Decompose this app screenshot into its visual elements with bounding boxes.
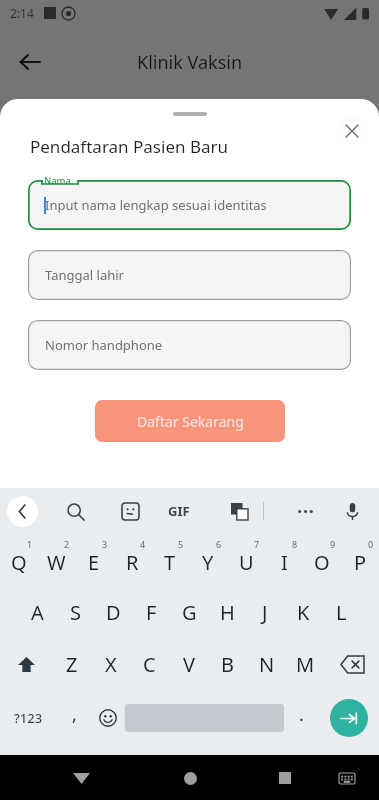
staticText: Y [202,549,214,576]
staticText: 0 [368,538,374,550]
staticText: V [183,651,195,678]
button[interactable]: Backspace [325,638,379,690]
staticText: G [182,599,197,626]
button[interactable]: Recents [267,760,303,796]
staticText: N [259,651,275,678]
button[interactable]: P [341,534,379,586]
button[interactable]: Z [53,638,91,690]
staticText: Nama [44,174,71,187]
button[interactable]: Search [58,494,92,528]
staticText: . [299,702,304,727]
staticText: F [146,599,157,626]
button[interactable]: L [322,586,360,638]
staticText: L [336,599,347,626]
button[interactable]: F [132,586,170,638]
staticText: T [164,549,176,576]
staticText: ?123 [14,709,43,727]
button[interactable]: Next [318,690,379,746]
staticText: C [143,651,156,678]
staticText: J [262,599,268,626]
button[interactable]: Close [337,116,367,146]
staticText: Pendaftaran Pasien Baru [30,135,229,158]
button[interactable]: Nomor handphone [28,320,351,370]
staticText: A [31,599,44,626]
button[interactable]: R [113,534,151,586]
staticText: P [354,549,367,576]
staticText: Daftar Sekarang [137,412,244,431]
staticText: O [314,549,330,576]
button[interactable]: Close toolbar [7,496,38,527]
button[interactable]: Emoji [91,690,125,746]
button[interactable]: Switch keyboard [332,763,362,793]
staticText: U [239,549,254,576]
staticText: E [88,549,100,576]
button[interactable]: I [265,534,303,586]
button[interactable]: Y [189,534,227,586]
button[interactable]: Back [63,760,99,796]
staticText: H [220,599,235,626]
button[interactable]: N [247,638,286,690]
button[interactable]: G [170,586,208,638]
button[interactable]: H [208,586,246,638]
staticText: R [126,549,139,576]
staticText: X [105,651,117,678]
button[interactable]: V [169,638,208,690]
button[interactable]: X [91,638,130,690]
button[interactable]: GIF [168,502,190,520]
button[interactable]: M [286,638,325,690]
staticText: 3 [102,538,108,550]
staticText: 9 [330,538,336,550]
button[interactable]: Home [172,760,208,796]
staticText: Nomor handphone [45,336,163,354]
staticText: 6 [216,538,222,550]
button[interactable]: C [130,638,169,690]
staticText: M [296,651,315,678]
staticText: 2:14 [10,5,34,21]
button[interactable]: More options [288,494,322,528]
button[interactable]: Stickers [113,494,147,528]
staticText: W [47,549,66,576]
staticText: Q [11,549,27,576]
button[interactable]: Q [0,534,37,586]
staticText: Z [66,651,78,678]
button[interactable]: , [57,690,91,746]
button[interactable]: T [151,534,189,586]
button[interactable]: E [75,534,113,586]
button[interactable]: O [303,534,341,586]
button[interactable]: Back [8,40,52,84]
staticText: K [297,599,310,626]
button[interactable]: K [284,586,322,638]
button[interactable]: S [56,586,94,638]
button[interactable]: ?123 [0,690,57,746]
button[interactable]: Input nama lengkap sesuai identitas [28,180,351,230]
button[interactable]: Voice input [335,494,369,528]
button[interactable]: Tanggal lahir [28,250,351,300]
staticText: 1 [27,538,33,550]
staticText: D [106,599,121,626]
button[interactable]: B [208,638,247,690]
button[interactable]: Daftar Sekarang [95,400,285,442]
staticText: 5 [178,538,184,550]
button[interactable]: Translate [222,494,256,528]
staticText: Klinik Vaksin [137,50,243,75]
staticText: 4 [140,538,146,550]
staticText: Tanggal lahir [45,266,124,284]
staticText: 2 [64,538,70,550]
button[interactable]: J [246,586,284,638]
staticText: B [221,651,234,678]
button[interactable]: D [94,586,132,638]
button[interactable]: W [37,534,75,586]
staticText: I [281,549,288,576]
button[interactable]: Shift [0,638,53,690]
button[interactable]: U [227,534,265,586]
staticText: 8 [292,538,298,550]
staticText: Input nama lengkap sesuai identitas [45,196,267,214]
staticText: S [70,599,81,626]
button[interactable]: . [284,690,318,746]
staticText: , [72,702,77,727]
staticText: 7 [254,538,260,550]
button[interactable]: A [19,586,56,638]
